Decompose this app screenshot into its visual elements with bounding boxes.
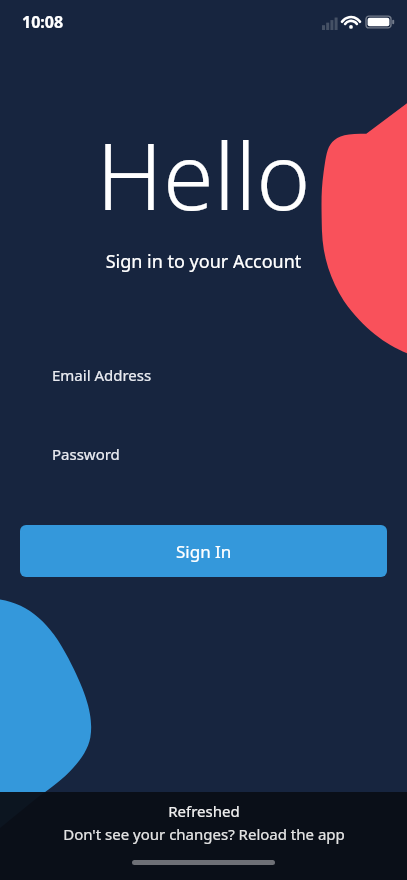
other: Home indicator (132, 860, 275, 865)
staticText: Don't see your changes? Reload the app (63, 824, 345, 844)
staticText: Password (52, 444, 120, 464)
button[interactable]: Sign In (20, 525, 387, 577)
staticText: Sign in to your Account (0, 249, 407, 274)
staticText: Sign In (176, 540, 232, 563)
staticText: Email Address (52, 365, 152, 385)
staticText: 10:08 (22, 11, 64, 33)
staticText: Hello (0, 112, 407, 237)
button[interactable]: Password (20, 431, 387, 477)
staticText: Refreshed (168, 801, 240, 821)
button[interactable]: Email Address (20, 352, 387, 398)
